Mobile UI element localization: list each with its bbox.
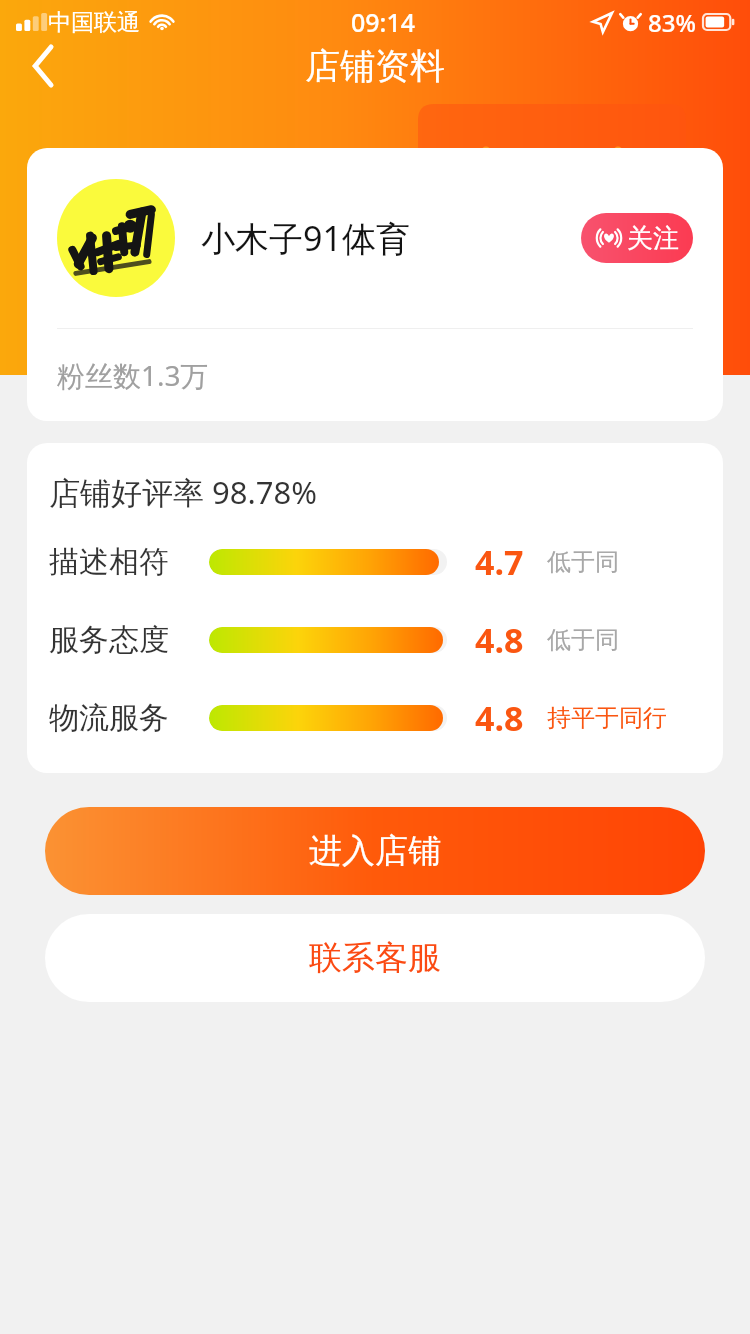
staticText: 4.7 xyxy=(475,539,541,585)
staticText: 83% xyxy=(648,6,696,39)
staticText: 09:14 xyxy=(351,5,416,39)
staticText: 4.8 xyxy=(475,695,541,741)
staticText: 低于同行-0.83% xyxy=(547,625,701,655)
staticText: 粉丝数1.3万 xyxy=(57,356,209,394)
staticText: 中国联通 xyxy=(48,8,140,37)
button[interactable]: 联系客服 xyxy=(45,914,705,1002)
staticText: 4.8 xyxy=(475,617,541,663)
staticText: 物流服务 xyxy=(49,699,187,737)
staticText: 店铺资料 xyxy=(305,44,445,88)
staticText: 关注 xyxy=(627,222,679,255)
staticText: 服务态度 xyxy=(49,621,187,659)
staticText: 小木子91体育 xyxy=(201,215,410,261)
button[interactable]: 进入店铺 xyxy=(45,807,705,895)
staticText: 联系客服 xyxy=(309,937,441,979)
staticText: 描述相符 xyxy=(49,543,187,581)
staticText: 低于同行-0.9% xyxy=(547,547,701,577)
staticText: 店铺好评率 98.78% xyxy=(49,471,318,513)
staticText: 持平于同行 xyxy=(547,703,667,733)
button[interactable]: 关注 xyxy=(581,213,693,263)
button[interactable]: Back xyxy=(16,44,72,88)
staticText: 进入店铺 xyxy=(309,830,441,872)
